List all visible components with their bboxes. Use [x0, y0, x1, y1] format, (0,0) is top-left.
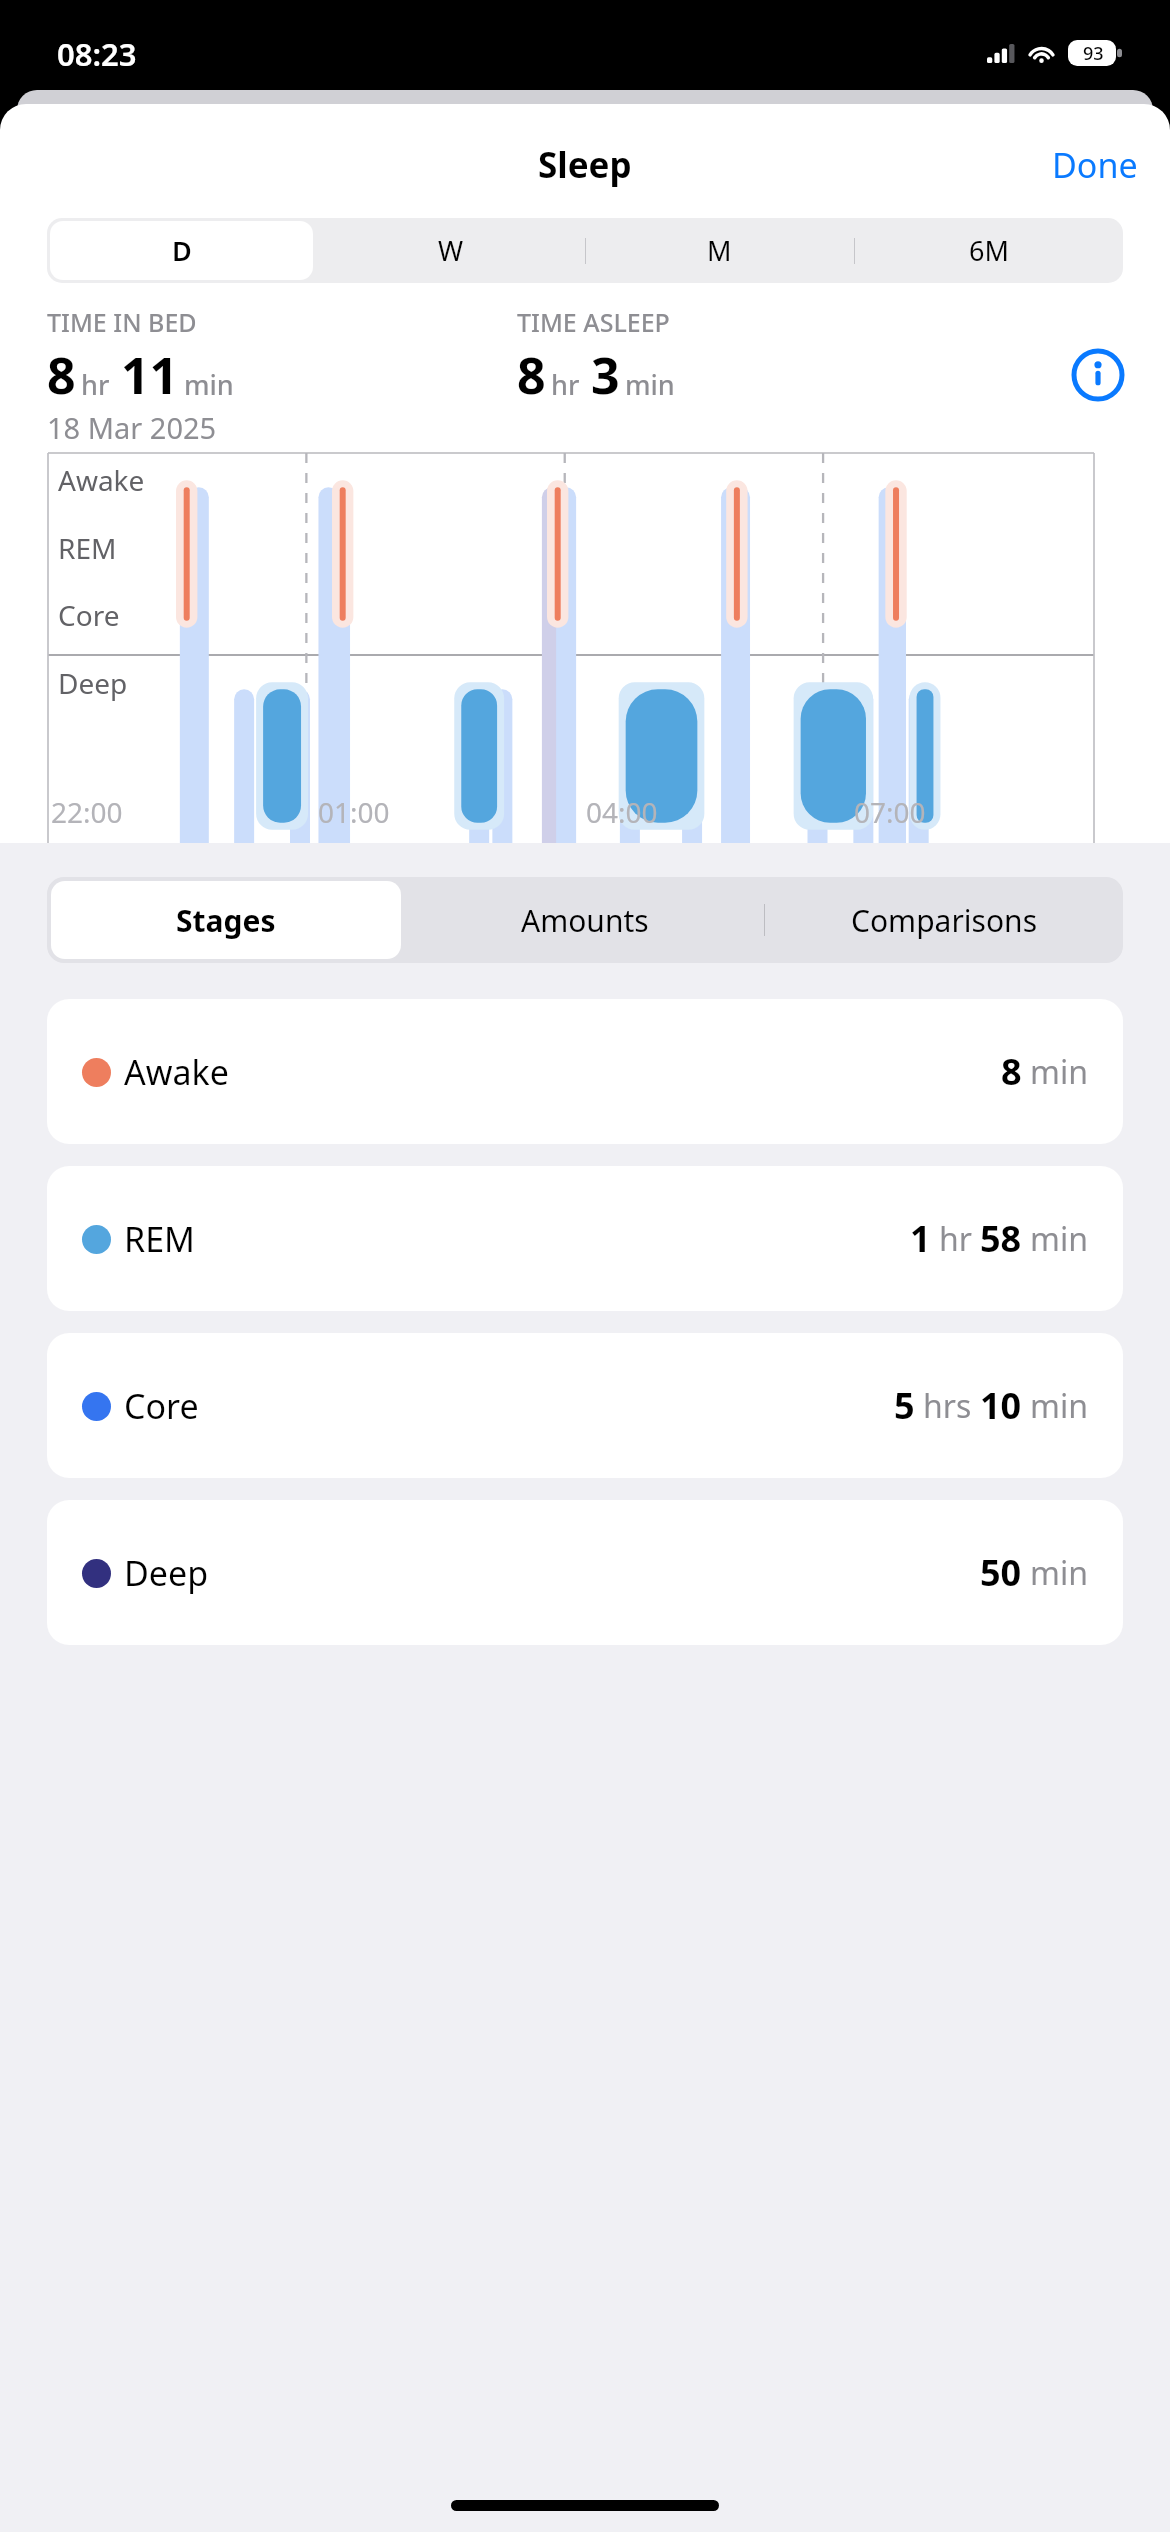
staticText: 10 — [980, 1381, 1022, 1430]
staticText: Done — [1052, 142, 1138, 188]
staticText: min — [1030, 1050, 1088, 1094]
staticText: min — [184, 366, 234, 403]
staticText: 8 — [47, 341, 76, 409]
staticText: 8 — [517, 341, 546, 409]
staticText: 8 — [1001, 1047, 1022, 1096]
staticText: TIME ASLEEP — [517, 305, 670, 339]
button[interactable]: Comparisons — [764, 877, 1123, 963]
button[interactable]: Done — [1020, 130, 1170, 200]
button[interactable]: Awake — [47, 999, 1123, 1144]
staticText: M — [707, 232, 732, 269]
staticText: Deep — [124, 1550, 209, 1596]
button[interactable]: Deep — [47, 1500, 1123, 1645]
staticText: 50 — [980, 1548, 1022, 1597]
staticText: D — [172, 232, 192, 269]
staticText: 04:00 — [586, 793, 658, 831]
button[interactable]: W — [316, 218, 585, 283]
staticText: REM — [58, 529, 117, 567]
staticText: min — [1030, 1384, 1088, 1428]
staticText: Core — [124, 1383, 199, 1429]
staticText: W — [438, 232, 464, 269]
staticText: hr — [81, 366, 110, 403]
button[interactable]: More information — [1070, 347, 1126, 403]
staticText: min — [1030, 1217, 1088, 1261]
staticText: Sleep — [538, 141, 632, 189]
staticText: hr — [551, 366, 580, 403]
button[interactable]: REM — [47, 1166, 1123, 1311]
staticText: 5 — [894, 1381, 915, 1430]
button[interactable]: M — [585, 218, 854, 283]
staticText: 01:00 — [318, 793, 390, 831]
staticText: min — [625, 366, 675, 403]
staticText: Core — [58, 596, 120, 634]
staticText: min — [1030, 1551, 1088, 1595]
staticText: 1 — [910, 1214, 931, 1263]
staticText: Deep — [58, 664, 128, 702]
button[interactable]: Core — [47, 1333, 1123, 1478]
staticText: 11 — [121, 341, 179, 409]
button[interactable]: Stages — [47, 877, 405, 963]
button[interactable]: Amounts — [405, 877, 764, 963]
staticText: Amounts — [521, 900, 649, 941]
staticText: 22:00 — [51, 793, 123, 831]
staticText: Comparisons — [851, 900, 1037, 941]
staticText: 93 — [1083, 41, 1104, 66]
staticText: TIME IN BED — [47, 305, 197, 339]
staticText: Awake — [58, 461, 145, 499]
staticText: hrs — [923, 1384, 972, 1428]
staticText: 6M — [969, 232, 1009, 269]
staticText: Awake — [124, 1049, 229, 1095]
staticText: 08:23 — [57, 33, 137, 75]
staticText: hr — [939, 1217, 972, 1261]
staticText: 58 — [980, 1214, 1022, 1263]
button[interactable]: D — [47, 218, 316, 283]
staticText: Stages — [176, 900, 276, 941]
staticText: 3 — [591, 341, 620, 409]
staticText: 07:00 — [854, 793, 926, 831]
staticText: 18 Mar 2025 — [47, 408, 217, 447]
staticText: REM — [124, 1216, 195, 1262]
button[interactable]: 6M — [854, 218, 1123, 283]
